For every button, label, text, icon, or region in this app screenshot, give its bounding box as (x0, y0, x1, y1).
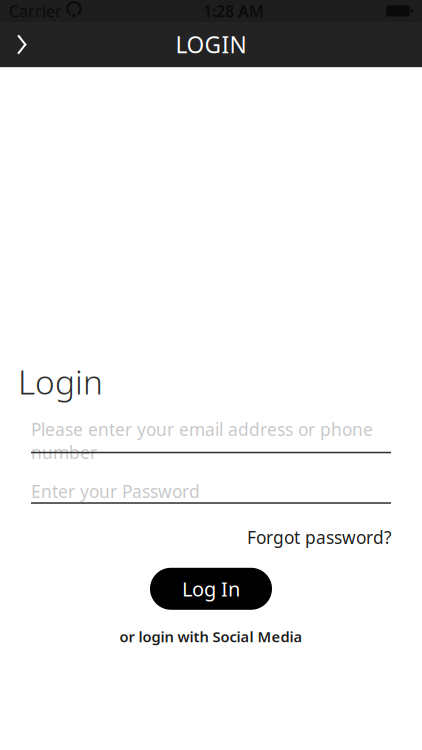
staticText: Please enter your email address or phone… (31, 418, 373, 464)
button[interactable]: or login with Social Media (119, 627, 302, 646)
staticText: Forgot password? (247, 526, 392, 549)
staticText: Log In (182, 575, 240, 602)
button[interactable]: Log In (150, 568, 272, 610)
staticText: Login (18, 359, 103, 404)
button[interactable]: Back (0, 22, 44, 66)
staticText: or login with Social Media (119, 627, 302, 646)
staticText: Enter your Password (31, 480, 200, 503)
staticText: 1:28 AM (203, 0, 264, 22)
button[interactable]: Forgot password? (247, 526, 392, 549)
staticText: LOGIN (175, 29, 246, 59)
staticText: Carrier (9, 0, 62, 22)
